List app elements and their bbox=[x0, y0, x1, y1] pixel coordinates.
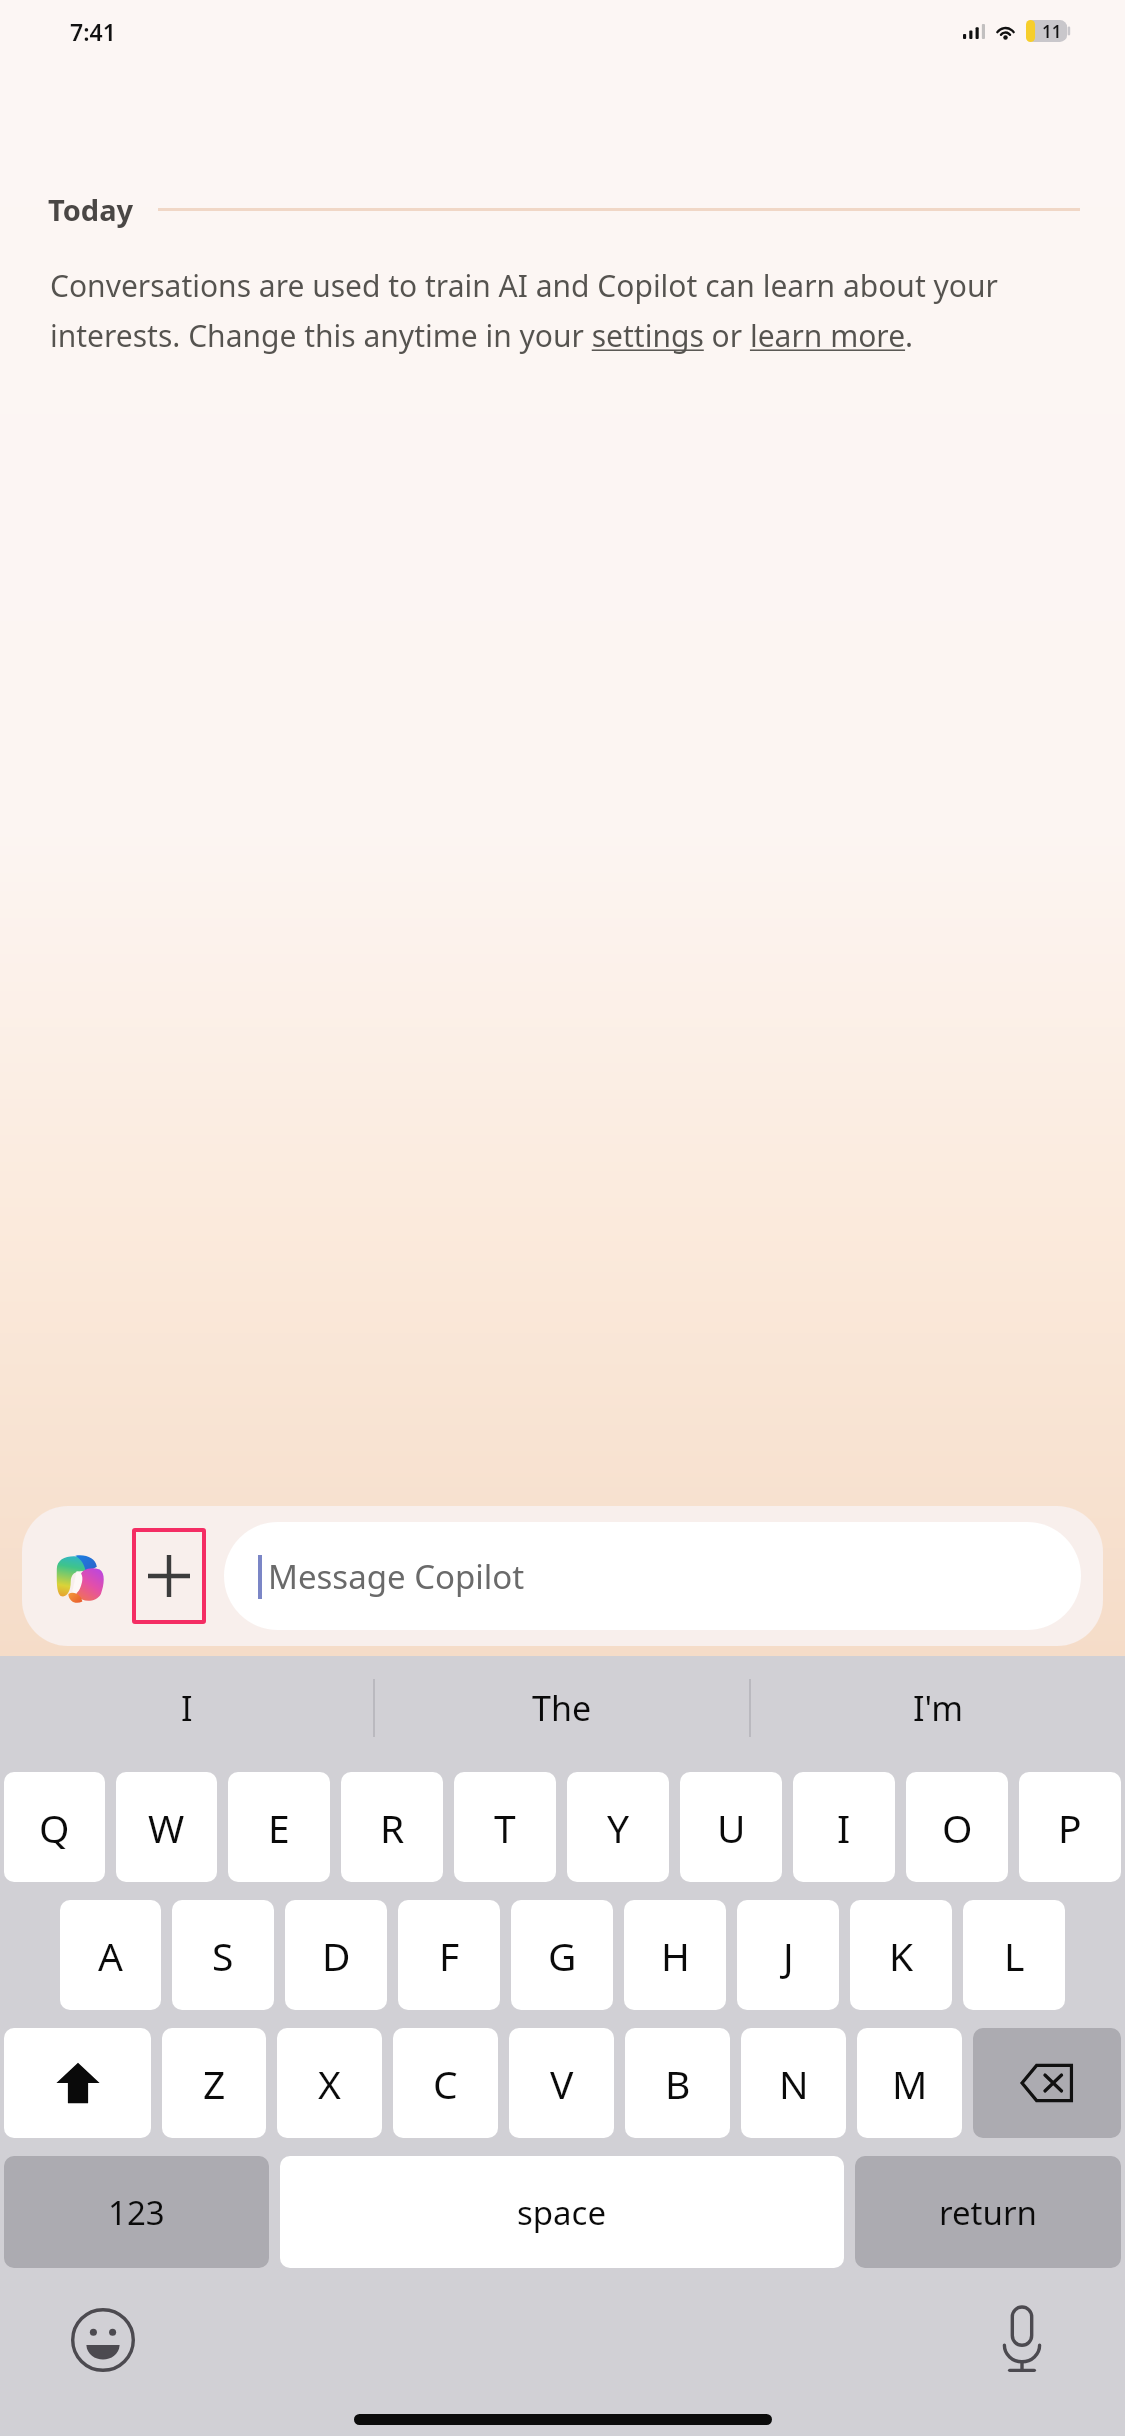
staticText: I'm bbox=[913, 1685, 963, 1731]
staticText: O bbox=[942, 1801, 973, 1854]
staticText: I bbox=[837, 1801, 851, 1854]
button[interactable]: R bbox=[341, 1772, 443, 1882]
staticText: 7:41 bbox=[70, 16, 116, 47]
button[interactable]: U bbox=[680, 1772, 782, 1882]
staticText: 11 bbox=[1042, 20, 1062, 43]
button[interactable]: Dictation bbox=[981, 2299, 1063, 2381]
staticText: J bbox=[783, 1929, 794, 1982]
staticText: Today bbox=[48, 190, 134, 229]
button[interactable]: I'm bbox=[751, 1656, 1125, 1760]
button[interactable]: K bbox=[850, 1900, 952, 2010]
button[interactable]: X bbox=[277, 2028, 382, 2138]
button[interactable]: Add attachment bbox=[132, 1528, 206, 1624]
staticText: Message Copilot bbox=[268, 1554, 525, 1599]
staticText: E bbox=[268, 1801, 290, 1854]
staticText: G bbox=[548, 1929, 577, 1982]
button[interactable]: J bbox=[737, 1900, 839, 2010]
staticText: T bbox=[494, 1801, 516, 1854]
button[interactable]: I bbox=[793, 1772, 895, 1882]
staticText: C bbox=[433, 2057, 458, 2110]
button[interactable]: P bbox=[1019, 1772, 1121, 1882]
staticText: Y bbox=[607, 1801, 630, 1854]
button[interactable]: G bbox=[511, 1900, 613, 2010]
button[interactable]: W bbox=[116, 1772, 217, 1882]
button[interactable]: The bbox=[375, 1656, 749, 1760]
staticText: N bbox=[779, 2057, 809, 2110]
staticText: space bbox=[517, 2190, 607, 2235]
button[interactable]: C bbox=[393, 2028, 498, 2138]
staticText: X bbox=[318, 2057, 341, 2110]
button[interactable]: 123 bbox=[4, 2156, 269, 2268]
staticText: Q bbox=[39, 1801, 70, 1854]
button[interactable]: B bbox=[625, 2028, 730, 2138]
button[interactable]: space bbox=[280, 2156, 844, 2268]
button[interactable]: M bbox=[857, 2028, 962, 2138]
staticText: The bbox=[532, 1685, 592, 1731]
staticText: H bbox=[661, 1929, 690, 1982]
staticText: U bbox=[717, 1801, 746, 1854]
button[interactable]: H bbox=[624, 1900, 726, 2010]
button[interactable]: Copilot bbox=[48, 1544, 112, 1608]
staticText: I bbox=[181, 1685, 193, 1731]
button[interactable]: F bbox=[398, 1900, 500, 2010]
button[interactable]: S bbox=[172, 1900, 274, 2010]
button[interactable]: E bbox=[228, 1772, 330, 1882]
button[interactable]: O bbox=[906, 1772, 1008, 1882]
staticText: M bbox=[892, 2057, 928, 2110]
button[interactable]: A bbox=[60, 1900, 161, 2010]
staticText: F bbox=[439, 1929, 460, 1982]
button[interactable]: Emoji bbox=[62, 2299, 144, 2381]
button[interactable]: T bbox=[454, 1772, 556, 1882]
staticText: R bbox=[380, 1801, 405, 1854]
staticText: 123 bbox=[108, 2190, 165, 2235]
button[interactable]: Y bbox=[567, 1772, 669, 1882]
button[interactable]: N bbox=[741, 2028, 846, 2138]
button[interactable]: D bbox=[285, 1900, 387, 2010]
staticText: A bbox=[98, 1929, 123, 1982]
button[interactable]: Z bbox=[162, 2028, 266, 2138]
button[interactable]: return bbox=[855, 2156, 1121, 2268]
button[interactable]: L bbox=[963, 1900, 1065, 2010]
button[interactable]: Q bbox=[4, 1772, 105, 1882]
staticText: W bbox=[148, 1801, 185, 1854]
staticText: S bbox=[212, 1929, 234, 1982]
button[interactable]: I bbox=[0, 1656, 373, 1760]
staticText: B bbox=[665, 2057, 691, 2110]
staticText: K bbox=[889, 1929, 914, 1982]
staticText: P bbox=[1058, 1801, 1082, 1854]
staticText: V bbox=[550, 2057, 574, 2110]
button[interactable]: Delete bbox=[973, 2028, 1121, 2138]
staticText: Z bbox=[203, 2057, 226, 2110]
button[interactable]: V bbox=[509, 2028, 614, 2138]
staticText: L bbox=[1004, 1929, 1025, 1982]
staticText: D bbox=[322, 1929, 351, 1982]
button[interactable]: Shift bbox=[4, 2028, 151, 2138]
staticText: Conversations are used to train AI and C… bbox=[50, 265, 1081, 356]
staticText: return bbox=[939, 2190, 1037, 2235]
button[interactable]: Message Copilot bbox=[224, 1522, 1081, 1630]
